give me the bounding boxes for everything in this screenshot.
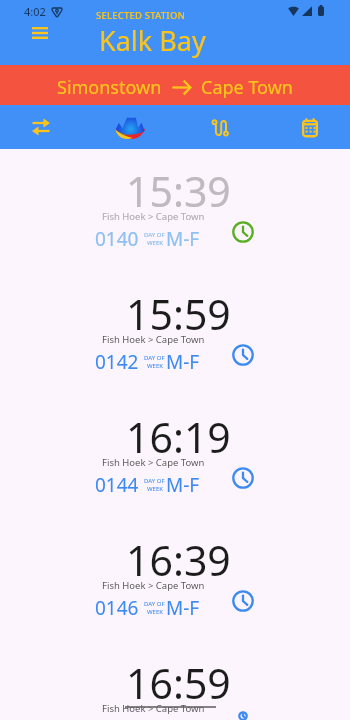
staticText: SELECTED STATION bbox=[96, 9, 186, 22]
staticText: WEEK bbox=[147, 485, 163, 493]
button[interactable]: Home bbox=[102, 105, 158, 149]
button[interactable]: 15:39 bbox=[0, 149, 350, 272]
staticText: 16:39 bbox=[126, 532, 231, 588]
staticText: Fish Hoek > Cape Town bbox=[102, 456, 205, 469]
button[interactable]: 16:39 bbox=[0, 518, 350, 641]
staticText: 16:59 bbox=[126, 655, 231, 711]
staticText: Fish Hoek > Cape Town bbox=[102, 333, 205, 346]
staticText: 0146 bbox=[95, 595, 139, 621]
button[interactable]: Timetable bbox=[282, 105, 338, 149]
staticText: 15:59 bbox=[126, 286, 231, 342]
staticText: Kalk Bay bbox=[99, 22, 206, 59]
staticText: 4:02 bbox=[24, 4, 46, 19]
staticText: Fish Hoek > Cape Town bbox=[102, 579, 205, 592]
staticText: M-F bbox=[166, 349, 200, 375]
button[interactable]: Simonstown bbox=[0, 65, 350, 105]
staticText: 15:39 bbox=[126, 163, 231, 219]
button[interactable]: Open navigation menu bbox=[24, 21, 56, 45]
button[interactable]: Swap stations bbox=[13, 105, 69, 149]
staticText: 0144 bbox=[95, 472, 139, 498]
button[interactable]: 16:19 bbox=[0, 395, 350, 518]
staticText: M-F bbox=[166, 226, 200, 252]
button[interactable]: 16:59 bbox=[0, 641, 350, 720]
staticText: DAY OF bbox=[144, 354, 165, 362]
staticText: WEEK bbox=[147, 239, 163, 247]
staticText: Fish Hoek > Cape Town bbox=[102, 210, 205, 223]
staticText: Fish Hoek > Cape Town bbox=[102, 702, 205, 715]
staticText: 16:19 bbox=[126, 409, 231, 465]
staticText: 0140 bbox=[95, 226, 139, 252]
button[interactable]: Route map bbox=[192, 105, 248, 149]
staticText: DAY OF bbox=[144, 231, 165, 239]
staticText: WEEK bbox=[147, 362, 163, 370]
staticText: Simonstown bbox=[57, 75, 162, 100]
staticText: M-F bbox=[166, 472, 200, 498]
button[interactable]: 15:59 bbox=[0, 272, 350, 395]
staticText: DAY OF bbox=[144, 600, 165, 608]
staticText: Cape Town bbox=[201, 75, 293, 100]
staticText: 0142 bbox=[95, 349, 139, 375]
staticText: WEEK bbox=[147, 608, 163, 616]
staticText: DAY OF bbox=[144, 477, 165, 485]
staticText: M-F bbox=[166, 595, 200, 621]
